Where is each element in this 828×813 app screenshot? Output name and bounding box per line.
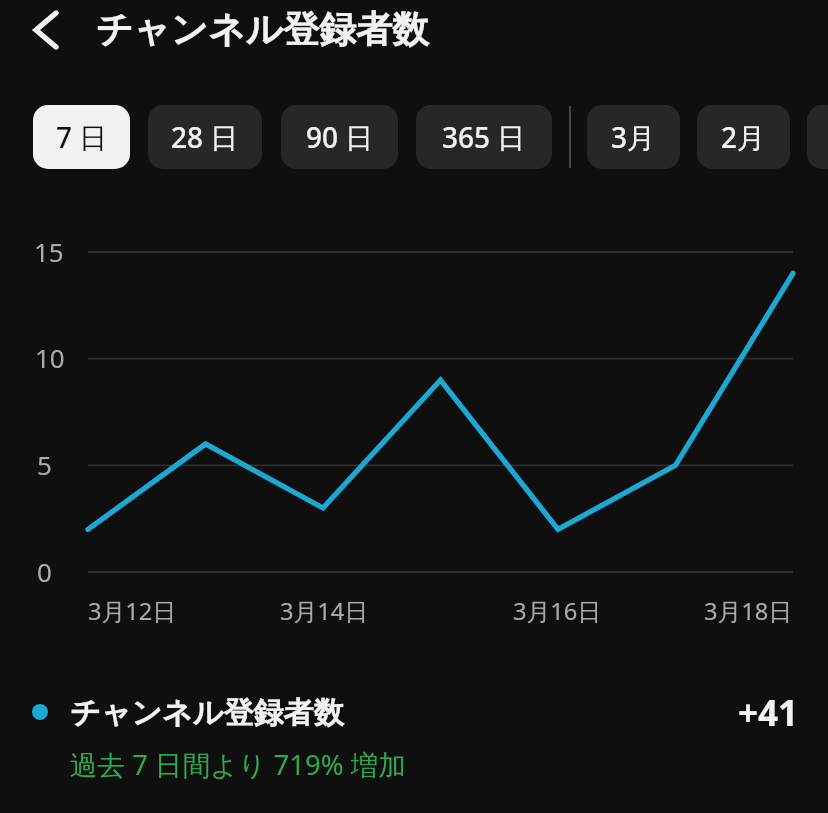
button[interactable]: 2月 bbox=[697, 105, 790, 169]
staticText: 3月14日 bbox=[280, 595, 369, 627]
staticText: 0 bbox=[37, 554, 52, 589]
staticText: 365 日 bbox=[442, 118, 526, 156]
button[interactable]: 3月 bbox=[587, 105, 680, 169]
staticText: 10 bbox=[35, 340, 65, 375]
button[interactable]: 365 日 bbox=[416, 105, 552, 169]
staticText: チャンネル登録者数 bbox=[70, 694, 344, 732]
staticText: 15 bbox=[34, 234, 64, 269]
staticText: 3月18日 bbox=[704, 595, 793, 627]
staticText: 7 日 bbox=[56, 118, 108, 156]
staticText: チャンネル登録者数 bbox=[96, 7, 429, 53]
staticText: 過去 7 日間より 719% 増加 bbox=[70, 746, 406, 784]
staticText: 5 bbox=[37, 447, 52, 482]
button[interactable]: チャンネル登録者数 bbox=[0, 686, 828, 786]
staticText: 2月 bbox=[721, 118, 766, 156]
button[interactable]: Back bbox=[6, 0, 84, 60]
staticText: 3月 bbox=[611, 118, 656, 156]
button[interactable]: 7 日 bbox=[33, 105, 130, 169]
staticText: 28 日 bbox=[171, 118, 239, 156]
button[interactable]: 28 日 bbox=[148, 105, 262, 169]
staticText: +41 bbox=[0, 689, 798, 737]
button[interactable]: 90 日 bbox=[281, 105, 398, 169]
staticText: 90 日 bbox=[306, 118, 374, 156]
button[interactable]: 1月 bbox=[807, 105, 828, 169]
staticText: 3月16日 bbox=[513, 595, 602, 627]
staticText: 3月12日 bbox=[88, 595, 177, 627]
